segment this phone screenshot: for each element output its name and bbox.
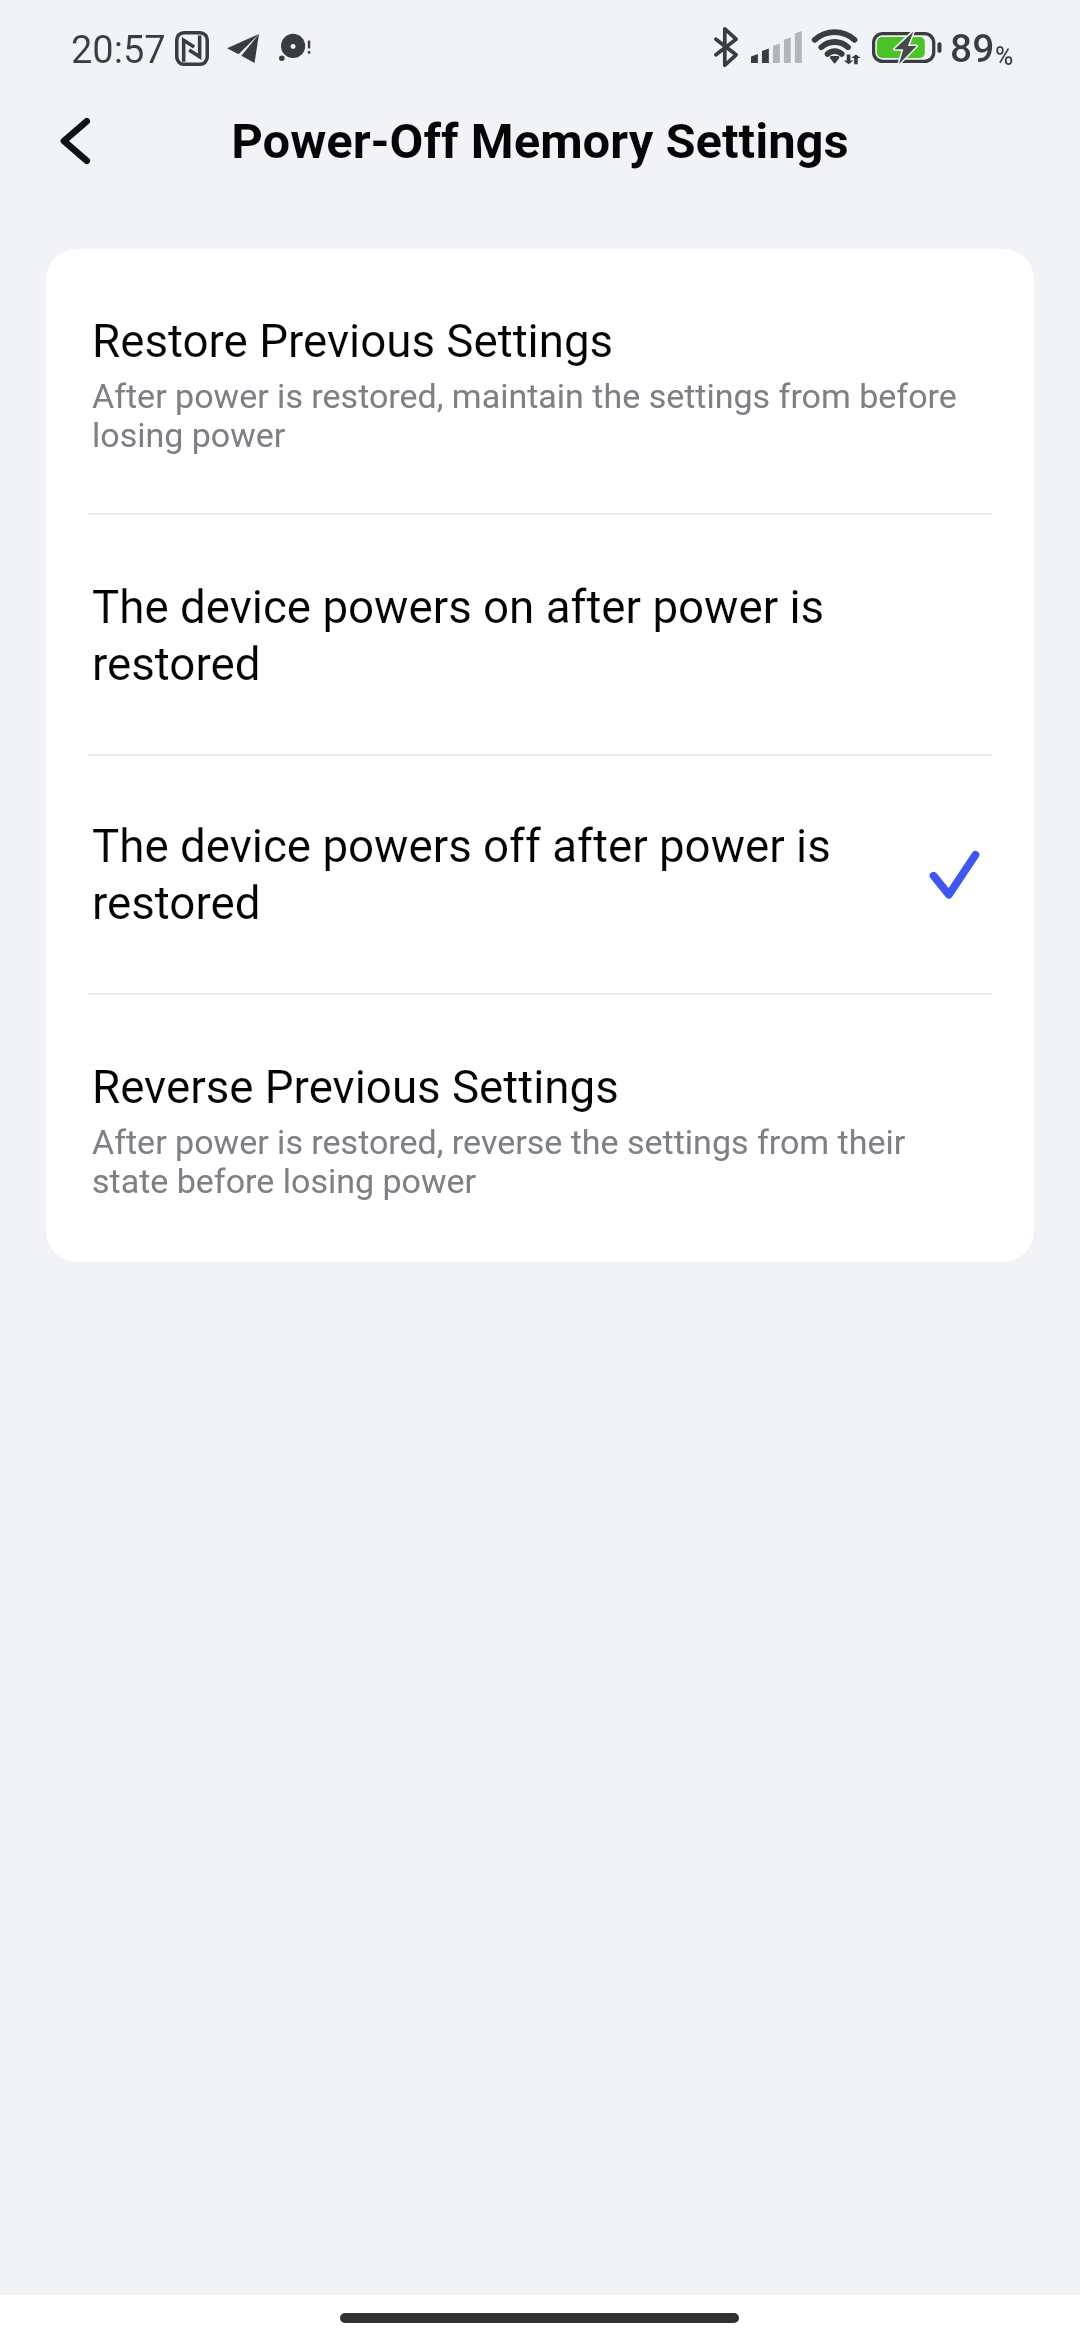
staticText: 89 [950,26,995,72]
button[interactable]: Back [26,114,121,186]
staticText: 20:57 [71,28,166,73]
button[interactable]: The device powers off after power is res… [46,756,1034,993]
staticText: The device powers off after power is res… [92,817,990,931]
staticText: Restore Previous Settings [92,312,614,369]
button[interactable]: The device powers on after power is rest… [46,515,1034,754]
button[interactable]: Restore Previous Settings [46,249,1034,513]
staticText: Reverse Previous Settings [92,1058,619,1115]
staticText: The device powers on after power is rest… [92,578,990,692]
button[interactable]: Reverse Previous Settings [46,995,1034,1262]
staticText: After power is restored, reverse the set… [92,1123,990,1201]
staticText: Power-Off Memory Settings [231,113,849,170]
staticText: % [995,42,1014,71]
staticText: After power is restored, maintain the se… [92,377,990,455]
